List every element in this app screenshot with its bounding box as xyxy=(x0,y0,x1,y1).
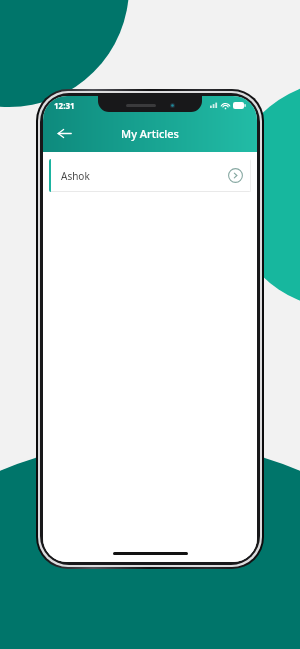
button[interactable]: Ashok xyxy=(49,159,251,192)
staticText: My Articles xyxy=(79,126,221,141)
staticText: Ashok xyxy=(61,169,90,183)
staticText: 12:31 xyxy=(54,100,75,111)
button[interactable]: Back xyxy=(49,118,79,148)
